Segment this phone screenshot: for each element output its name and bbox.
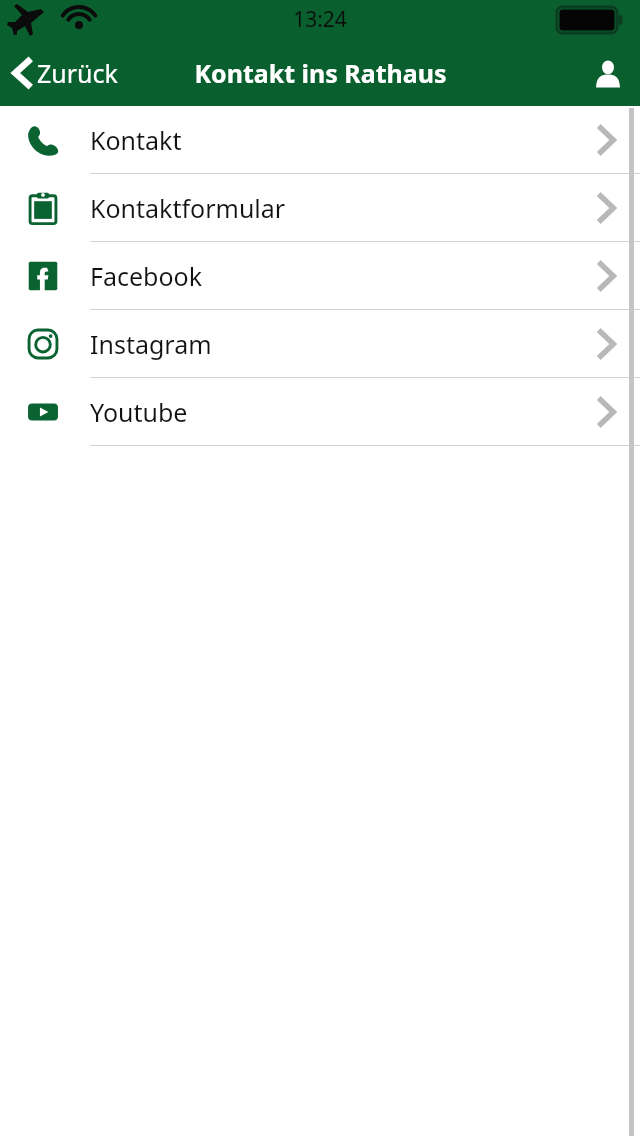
button[interactable]: Facebook xyxy=(0,242,640,310)
button[interactable]: Kontakt xyxy=(0,106,640,174)
staticText: Zurück xyxy=(37,56,118,90)
staticText: Kontakt xyxy=(90,123,182,157)
button[interactable]: Profil xyxy=(576,40,640,106)
staticText: Youtube xyxy=(90,395,188,429)
staticText: Instagram xyxy=(90,327,212,361)
button[interactable]: Youtube xyxy=(0,378,640,446)
staticText: 13:24 xyxy=(293,5,347,34)
staticText: Kontakt ins Rathaus xyxy=(194,56,447,90)
staticText: Facebook xyxy=(90,259,203,293)
staticText: Kontaktformular xyxy=(90,191,286,225)
button[interactable]: Zurück xyxy=(0,40,130,106)
button[interactable]: Kontaktformular xyxy=(0,174,640,242)
button[interactable]: Instagram xyxy=(0,310,640,378)
